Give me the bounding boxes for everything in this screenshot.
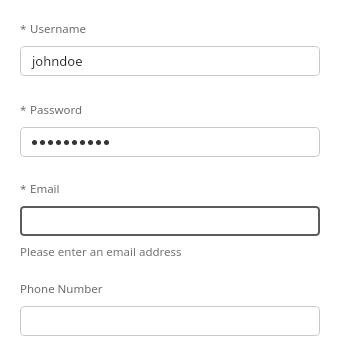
staticText: * (20, 181, 30, 197)
button[interactable] (20, 206, 320, 236)
staticText: Username (30, 21, 86, 37)
button[interactable] (20, 127, 320, 157)
staticText: Please enter an email address (20, 244, 182, 260)
staticText: Email (30, 181, 60, 197)
staticText: johndoe (32, 52, 83, 70)
button[interactable]: johndoe (20, 46, 320, 76)
staticText: * (20, 21, 30, 37)
button[interactable] (20, 306, 320, 336)
staticText: * (20, 102, 30, 118)
staticText: Password (30, 102, 83, 118)
staticText: Phone Number (20, 281, 103, 297)
